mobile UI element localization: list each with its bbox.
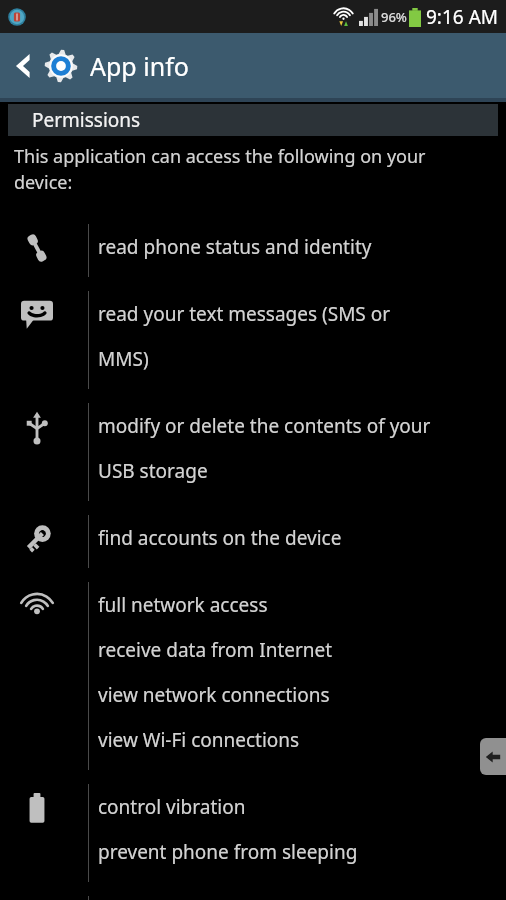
staticText: Permissions	[32, 107, 141, 133]
staticText: read phone status and identity	[98, 234, 372, 260]
staticText: read your text messages (SMS or	[98, 301, 391, 327]
staticText: modify or delete the contents of your	[98, 413, 431, 439]
button[interactable]: control vibration	[0, 778, 506, 890]
staticText: view Wi-Fi connections	[98, 727, 300, 753]
staticText: USB storage	[98, 458, 208, 484]
button[interactable]: modify or delete the contents of your	[0, 397, 506, 509]
button[interactable]: find accounts on the device	[0, 509, 506, 576]
button[interactable]: read phone status and identity	[0, 218, 506, 285]
button[interactable]: full network access	[0, 576, 506, 778]
staticText: receive data from Internet	[98, 637, 333, 663]
staticText: This application can access the followin…	[14, 144, 466, 194]
staticText: App info	[90, 49, 189, 83]
button[interactable]: Back	[0, 33, 40, 98]
staticText: view network connections	[98, 682, 330, 708]
button[interactable]: read your text messages (SMS or	[0, 285, 506, 397]
staticText: 96%	[381, 8, 407, 26]
staticText: full network access	[98, 592, 268, 618]
staticText: 9:16 AM	[426, 4, 499, 30]
button[interactable]: Permissions	[8, 104, 498, 136]
staticText: MMS)	[98, 346, 149, 372]
staticText: prevent phone from sleeping	[98, 839, 358, 865]
staticText: control vibration	[98, 794, 246, 820]
button[interactable]: Open panel	[480, 738, 506, 775]
staticText: find accounts on the device	[98, 525, 342, 551]
